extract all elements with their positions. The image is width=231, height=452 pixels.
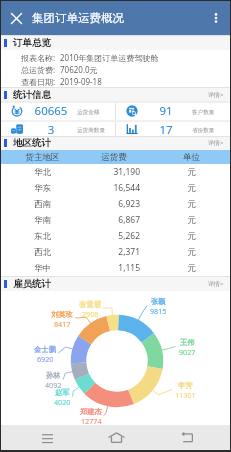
staticText: 70620.0元	[60, 64, 98, 75]
staticText: 17	[141, 122, 191, 136]
button[interactable]: 西北	[1, 244, 230, 260]
staticText: 郑建杰	[80, 407, 102, 416]
staticText: 报表名称:	[21, 52, 60, 63]
staticText: 华中	[1, 263, 84, 274]
staticText: 运货金额	[77, 109, 100, 116]
staticText: 6920	[37, 354, 54, 364]
staticText: 2908	[82, 309, 99, 319]
staticText: 客户数量	[192, 109, 215, 116]
staticText: 赵军	[55, 388, 70, 397]
staticText: 张颖	[151, 297, 166, 306]
staticText: 孙林	[46, 371, 61, 380]
staticText: 9027	[179, 347, 196, 357]
staticText: 订单总览	[13, 37, 51, 49]
staticText: 12774	[81, 416, 102, 426]
button[interactable]: 华北	[1, 164, 230, 180]
staticText: 运货费	[84, 152, 144, 163]
staticText: 91	[141, 103, 191, 119]
staticText: 11301	[175, 390, 196, 400]
button[interactable]: 3	[1, 122, 115, 136]
button[interactable]: 详情>	[208, 139, 224, 147]
staticText: 5,262	[84, 230, 140, 242]
staticText: 6,923	[84, 198, 140, 210]
staticText: 张雪眉	[79, 300, 101, 309]
button[interactable]: 华南	[1, 212, 230, 228]
staticText: 华东	[1, 183, 84, 194]
staticText: 元	[153, 263, 230, 274]
staticText: 元	[153, 247, 230, 258]
staticText: 31,190	[84, 166, 140, 178]
staticText: 4092	[45, 380, 62, 390]
staticText: 华南	[1, 215, 84, 226]
staticText: 雇员统计	[13, 278, 51, 290]
button[interactable]: More options	[210, 12, 222, 24]
staticText: 地区统计	[13, 137, 51, 149]
button[interactable]: Close	[11, 13, 22, 24]
staticText: 东北	[1, 231, 84, 242]
staticText: 金士鹏	[34, 345, 56, 354]
staticText: 总运货费:	[21, 64, 60, 75]
button[interactable]: Home	[106, 427, 127, 448]
staticText: 李芳	[178, 381, 193, 390]
staticText: 查看日期:	[21, 76, 60, 87]
button[interactable]: 60665	[1, 103, 115, 119]
staticText: 4020	[54, 397, 71, 407]
staticText: 元	[153, 215, 230, 226]
staticText: 货主地区	[1, 152, 84, 163]
staticText: 2010年集团订单运费驾驶舱	[60, 52, 159, 63]
staticText: 西南	[1, 199, 84, 210]
staticText: 元	[153, 199, 230, 210]
button[interactable]: 华东	[1, 180, 230, 196]
button[interactable]: 东北	[1, 228, 230, 244]
staticText: 元	[153, 183, 230, 194]
staticText: 元	[153, 231, 230, 242]
button[interactable]: 详情>	[208, 91, 224, 99]
staticText: 西北	[1, 247, 84, 258]
staticText: 集团订单运费概况	[32, 11, 124, 25]
staticText: 刘英玫	[51, 310, 73, 319]
button[interactable]: 西南	[1, 196, 230, 212]
staticText: 1,115	[84, 262, 140, 274]
staticText: 王伟	[180, 338, 195, 347]
staticText: 2,371	[84, 246, 140, 258]
button[interactable]: 91	[116, 103, 230, 119]
button[interactable]: Recent apps	[37, 427, 58, 448]
staticText: 元	[153, 167, 230, 178]
button[interactable]: Back	[176, 427, 197, 448]
staticText: 16,544	[84, 182, 140, 194]
staticText: 运货商数量	[77, 127, 105, 134]
button[interactable]: 华中	[1, 260, 230, 276]
staticText: 单位	[153, 152, 230, 163]
staticText: 9815	[150, 306, 167, 316]
staticText: 华北	[1, 167, 84, 178]
button[interactable]: 详情>	[208, 280, 224, 288]
staticText: 6,867	[84, 214, 140, 226]
staticText: 3	[26, 122, 76, 136]
staticText: 统计信息	[13, 89, 51, 101]
button[interactable]: 17	[116, 122, 230, 136]
staticText: 省份数量	[192, 127, 215, 134]
staticText: 8417	[54, 319, 71, 329]
staticText: 60665	[26, 103, 76, 119]
staticText: 2019-09-18	[60, 76, 102, 87]
